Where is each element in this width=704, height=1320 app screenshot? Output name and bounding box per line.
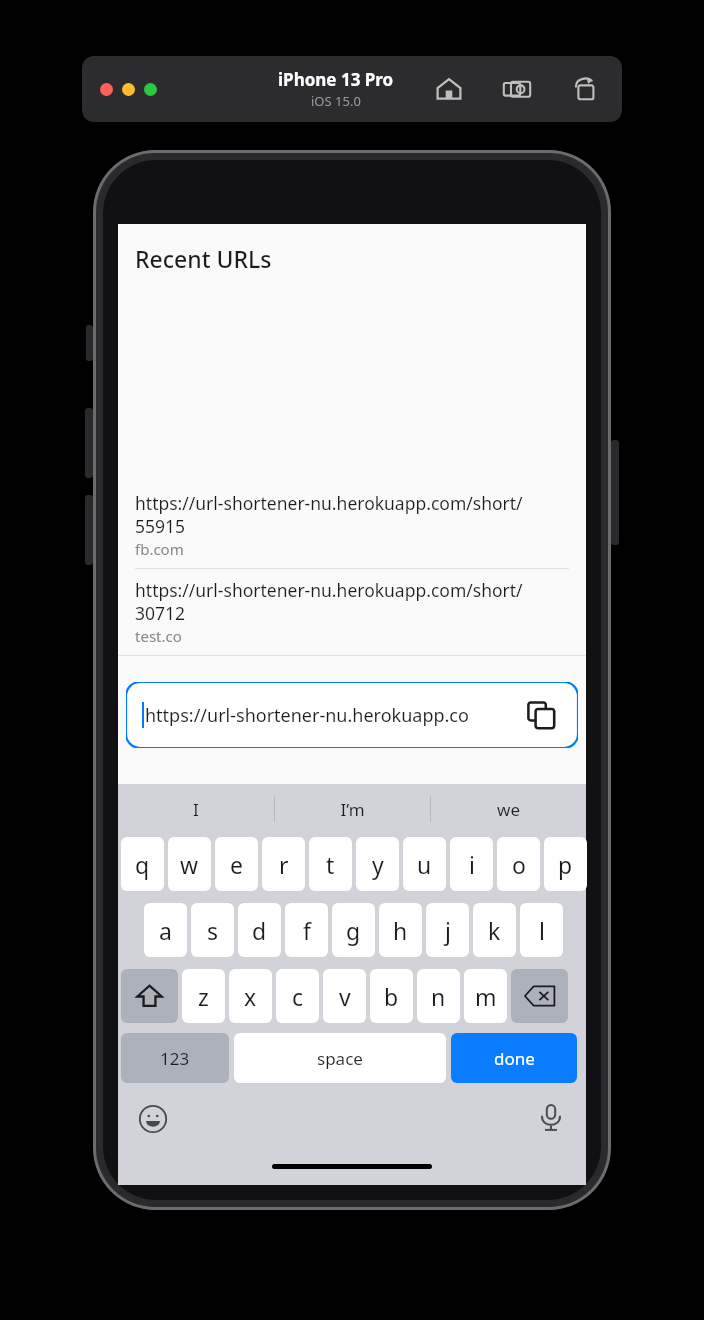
staticText: m [475,981,497,1012]
staticText: x [244,981,257,1012]
staticText: d [252,915,267,946]
button[interactable]: space [234,1033,446,1083]
staticText: k [488,915,501,946]
button[interactable]: d [238,903,281,957]
button[interactable]: Shift [121,969,178,1023]
button[interactable]: o [497,837,540,891]
staticText: done [494,1047,535,1070]
button[interactable]: Rotate [570,74,600,104]
staticText: Recent URLs [135,243,272,274]
button[interactable] [100,83,113,96]
staticText: I [193,798,199,821]
staticText: h [393,915,408,946]
staticText: iOS 15.0 [311,92,361,110]
staticText: https://url-shortener-nu.herokuapp.com/s… [135,578,569,625]
button[interactable]: Home [434,74,464,104]
staticText: t [326,849,335,880]
button[interactable]: I’m [275,784,430,834]
staticText: 123 [160,1047,190,1070]
staticText: space [317,1047,363,1070]
button[interactable]: m [464,969,507,1023]
button[interactable]: c [276,969,319,1023]
button[interactable]: l [520,903,563,957]
button[interactable]: Copy [526,700,556,730]
button[interactable]: Emoji [138,1104,168,1134]
staticText: q [135,849,150,880]
button[interactable]: h [379,903,422,957]
staticText: s [207,915,219,946]
staticText: o [512,849,526,880]
staticText: n [431,981,446,1012]
staticText: w [180,849,199,880]
button[interactable]: g [332,903,375,957]
button[interactable]: https://url-shortener-nu.herokuapp.com/s… [118,569,586,655]
staticText: u [417,849,432,880]
button[interactable]: s [191,903,234,957]
button[interactable]: v [323,969,366,1023]
staticText: y [372,849,384,880]
staticText: I’m [340,798,365,821]
button[interactable]: done [451,1033,577,1083]
button[interactable] [144,83,157,96]
button[interactable]: k [473,903,516,957]
staticText: r [279,849,289,880]
button[interactable]: x [229,969,272,1023]
button[interactable]: j [426,903,469,957]
button[interactable]: b [370,969,413,1023]
button[interactable]: Screenshot [502,74,532,104]
staticText: g [346,915,361,946]
staticText: l [539,915,545,946]
staticText: j [445,915,451,946]
staticText: e [230,849,243,880]
staticText: f [303,915,311,946]
button[interactable]: u [403,837,446,891]
button[interactable]: w [168,837,211,891]
staticText: we [497,798,520,821]
button[interactable]: f [285,903,328,957]
button[interactable]: https://url-shortener-nu.herokuapp.co [126,682,578,748]
button[interactable]: Backspace [511,969,568,1023]
button[interactable]: Dictation [536,1102,566,1132]
button[interactable]: z [182,969,225,1023]
button[interactable]: a [144,903,187,957]
staticText: i [469,849,475,880]
staticText: iPhone 13 Pro [278,68,394,91]
button[interactable]: we [431,784,586,834]
staticText: test.co [135,626,182,646]
button[interactable]: q [121,837,164,891]
staticText: https://url-shortener-nu.herokuapp.com/s… [135,491,569,538]
staticText: p [558,849,573,880]
button[interactable]: 123 [121,1033,229,1083]
staticText: b [384,981,399,1012]
staticText: fb.com [135,539,184,559]
button[interactable]: y [356,837,399,891]
button[interactable]: i [450,837,493,891]
button[interactable]: p [544,837,587,891]
staticText: z [198,981,209,1012]
button[interactable]: I [118,784,274,834]
staticText: c [292,981,304,1012]
staticText: https://url-shortener-nu.herokuapp.co [145,703,469,728]
button[interactable]: t [309,837,352,891]
staticText: v [339,981,351,1012]
button[interactable]: n [417,969,460,1023]
button[interactable] [122,83,135,96]
button[interactable]: e [215,837,258,891]
button[interactable]: https://url-shortener-nu.herokuapp.com/s… [118,482,586,568]
staticText: a [159,915,172,946]
button[interactable]: r [262,837,305,891]
